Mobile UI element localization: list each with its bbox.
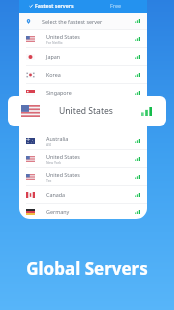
button[interactable]: United States: [19, 150, 147, 168]
staticText: Tex: [46, 178, 52, 183]
staticText: Free: [110, 2, 121, 9]
staticText: United States: [46, 33, 80, 40]
button[interactable]: Fastest servers: [19, 0, 83, 13]
staticText: United States: [59, 105, 141, 117]
button[interactable]: Free: [83, 0, 147, 13]
staticText: Korea: [46, 71, 61, 78]
button[interactable]: Korea: [19, 66, 147, 84]
button[interactable]: Location: [19, 13, 147, 29]
staticText: United States: [46, 171, 80, 178]
button[interactable]: United States: [19, 30, 147, 48]
button[interactable]: Australia: [19, 132, 147, 150]
button[interactable]: Germany: [19, 204, 147, 219]
staticText: United States: [46, 153, 80, 160]
button[interactable]: United States: [19, 168, 147, 186]
staticText: For Netflix: [46, 40, 63, 45]
staticText: Germany: [46, 208, 70, 215]
button[interactable]: Canada: [19, 186, 147, 204]
staticText: Japan: [46, 53, 61, 60]
button[interactable]: Singapore: [19, 84, 147, 102]
staticText: ASI: [46, 142, 52, 147]
staticText: Singapore: [46, 89, 72, 96]
staticText: Canada: [46, 191, 66, 198]
staticText: Select the fastest server: [42, 18, 135, 25]
staticText: Global Servers: [26, 257, 148, 280]
button[interactable]: United States: [8, 96, 166, 126]
staticText: Australia: [46, 135, 69, 142]
staticText: New York: [46, 160, 61, 165]
button[interactable]: Japan: [19, 48, 147, 66]
other: Location: [26, 19, 31, 24]
staticText: Fastest servers: [35, 2, 74, 9]
